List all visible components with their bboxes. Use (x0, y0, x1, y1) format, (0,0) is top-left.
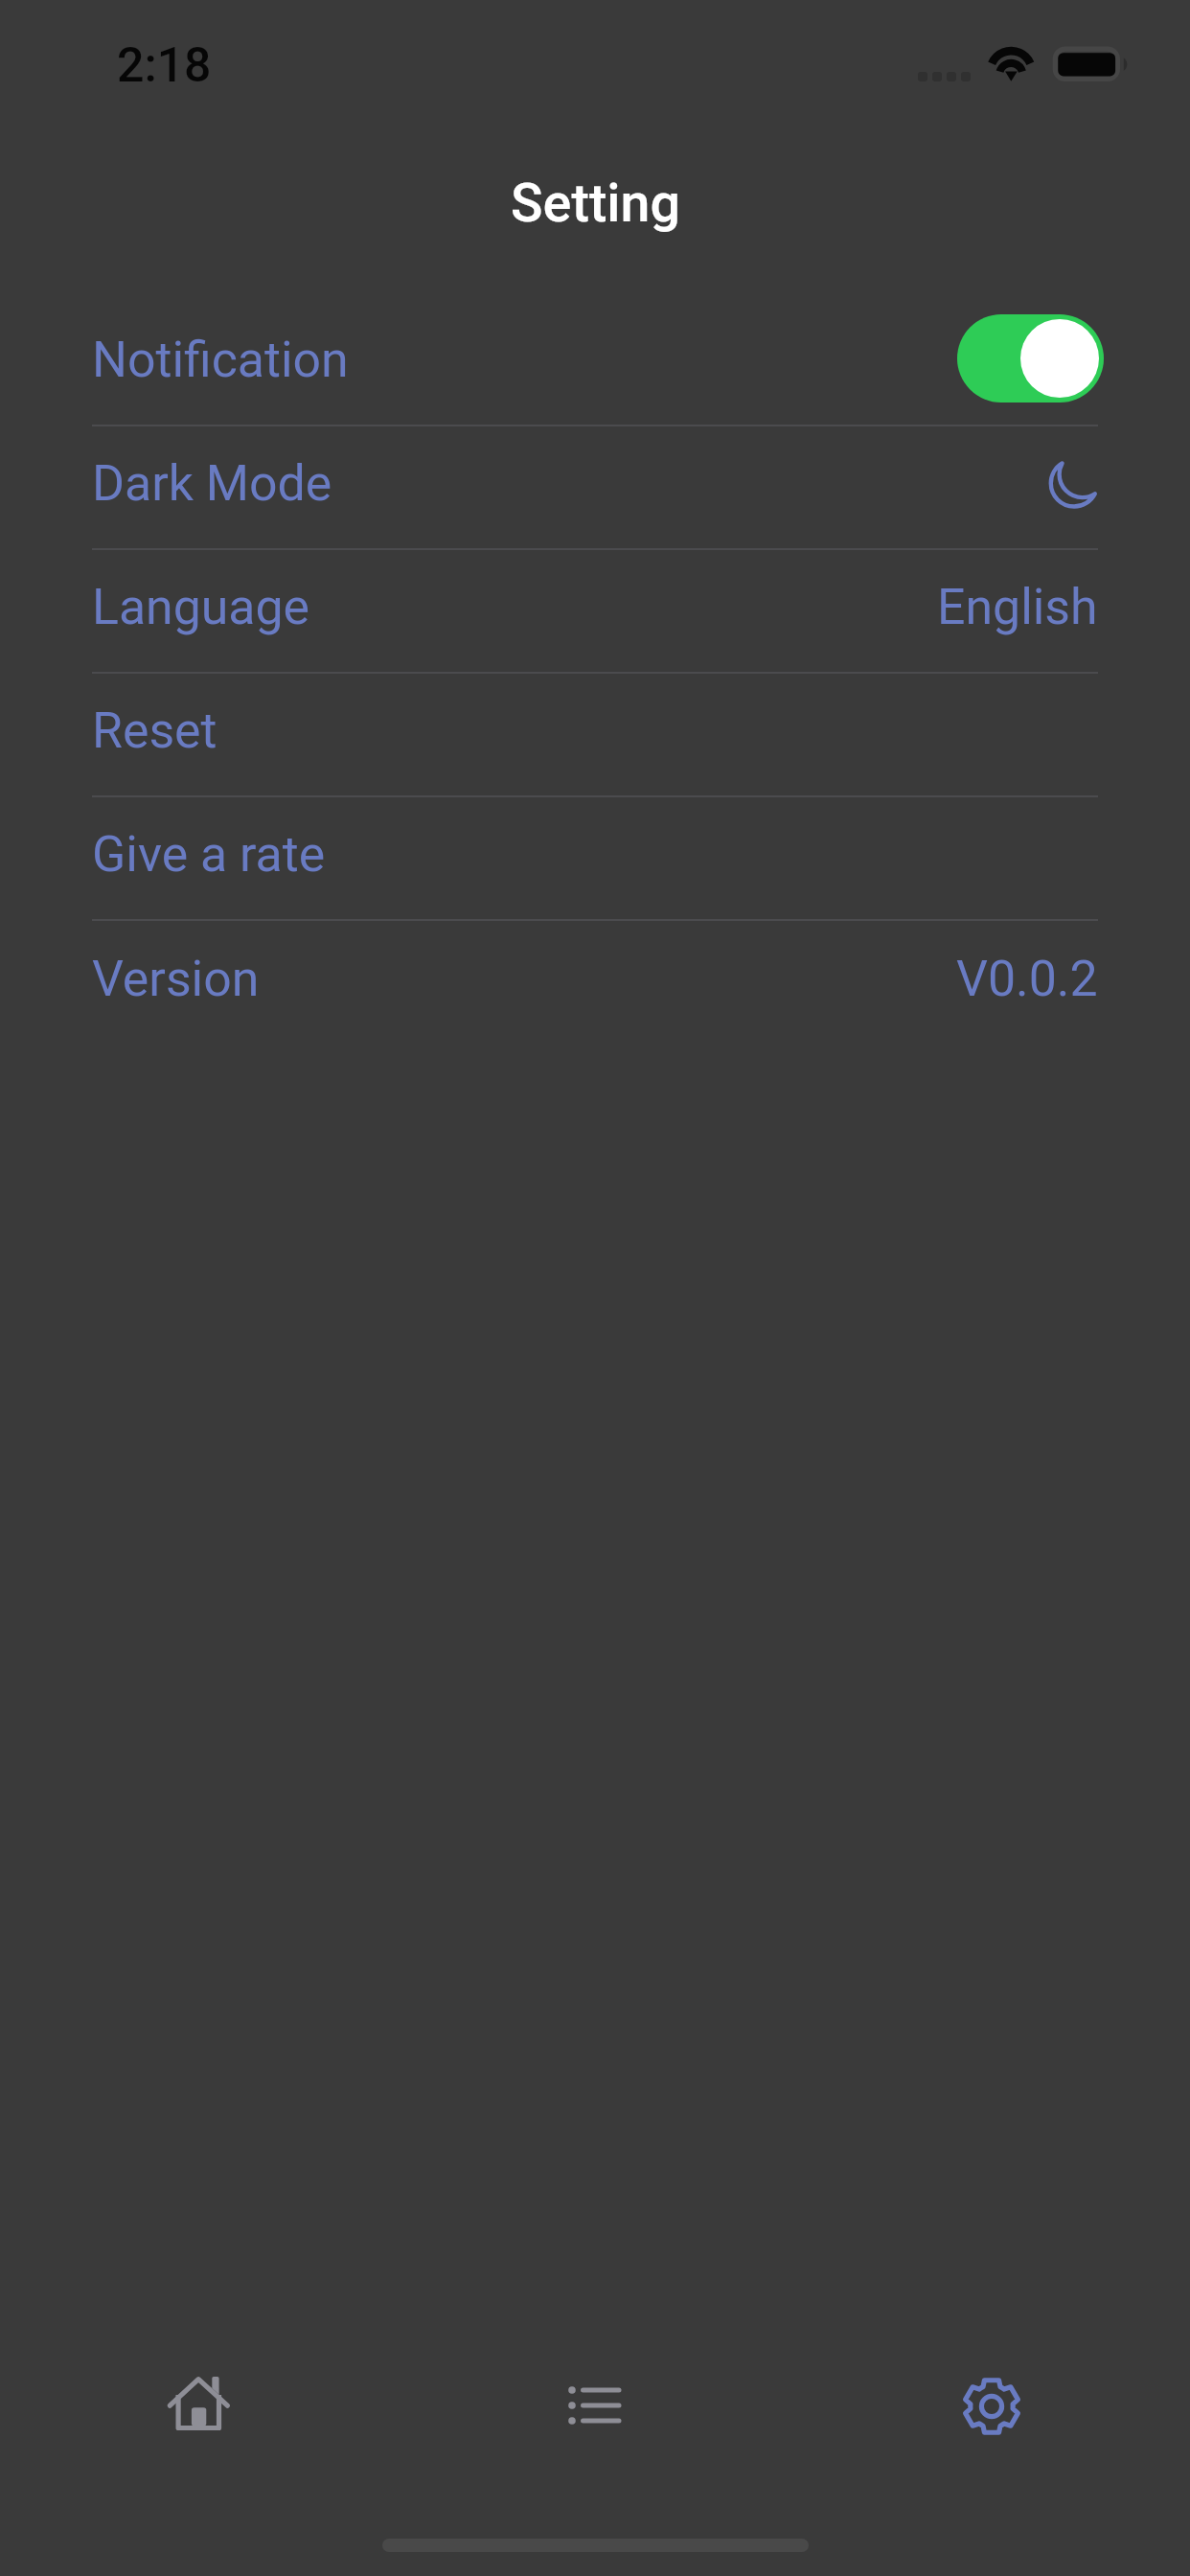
staticText: English (937, 578, 1098, 636)
staticText: Give a rate (92, 825, 326, 884)
staticText: Reset (92, 701, 217, 760)
button[interactable]: Settings (793, 2327, 1190, 2480)
button[interactable]: Dark Mode (0, 426, 1190, 548)
button[interactable]: Home (0, 2327, 397, 2480)
button[interactable]: Reset (0, 674, 1190, 795)
button[interactable]: Notification toggle (957, 314, 1104, 402)
button[interactable]: Notification (0, 303, 1190, 425)
button[interactable]: List (397, 2327, 793, 2480)
staticText: Version (92, 950, 260, 1008)
button[interactable]: Language (0, 550, 1190, 672)
button[interactable]: Give a rate (0, 797, 1190, 919)
staticText: Dark Mode (92, 454, 332, 513)
button[interactable]: Version (0, 921, 1190, 1045)
staticText: V0.0.2 (956, 950, 1098, 1008)
staticText: 2:18 (117, 37, 212, 94)
other: Dark mode (1044, 457, 1098, 511)
staticText: Language (92, 578, 310, 636)
staticText: Setting (511, 172, 680, 235)
staticText: Notification (92, 331, 349, 389)
